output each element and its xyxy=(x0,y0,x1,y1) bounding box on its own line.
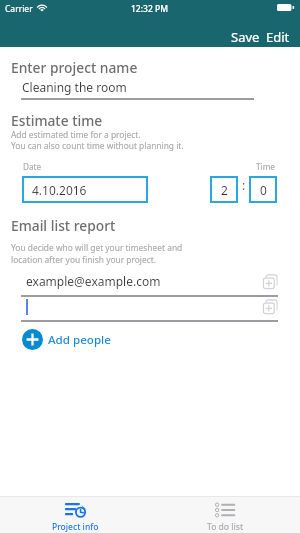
staticText: Date xyxy=(23,161,42,172)
button[interactable]: 4.10.2016 xyxy=(22,176,148,203)
staticText: Add people xyxy=(48,332,111,348)
staticText: You decide who will get your timesheet a… xyxy=(11,242,183,253)
button[interactable]: Project info xyxy=(0,497,150,533)
button[interactable]: 2 xyxy=(210,176,238,203)
button[interactable]: Edit xyxy=(263,25,293,49)
staticText: Edit xyxy=(266,28,290,46)
staticText: 0 xyxy=(260,182,267,198)
staticText: To do list xyxy=(207,521,244,533)
staticText: Enter project name xyxy=(11,58,138,77)
button[interactable]: 0 xyxy=(249,176,277,203)
staticText: You can also count time without planning… xyxy=(11,140,184,151)
staticText: Add estimated time for a project. xyxy=(11,129,141,140)
staticText: Estimate time xyxy=(11,111,103,130)
staticText: example@example.com xyxy=(26,273,161,289)
staticText: 12:32 PM xyxy=(131,3,168,15)
button[interactable]: Add from contacts xyxy=(263,299,279,315)
staticText: location after you finish your project. xyxy=(11,254,157,265)
staticText: Time xyxy=(256,161,275,172)
staticText: Email list report xyxy=(11,216,116,235)
staticText: Save xyxy=(231,28,260,46)
button[interactable]: Add people xyxy=(22,329,111,350)
staticText: Project info xyxy=(52,521,99,533)
button[interactable]: To do list xyxy=(150,497,300,533)
button[interactable]: Save xyxy=(228,25,263,49)
button[interactable]: Add from contacts xyxy=(263,274,279,290)
staticText: 2 xyxy=(221,182,228,198)
staticText: Carrier xyxy=(5,3,33,15)
staticText: : xyxy=(242,177,246,193)
staticText: 4.10.2016 xyxy=(32,182,87,198)
staticText: Cleaning the room xyxy=(22,79,127,95)
